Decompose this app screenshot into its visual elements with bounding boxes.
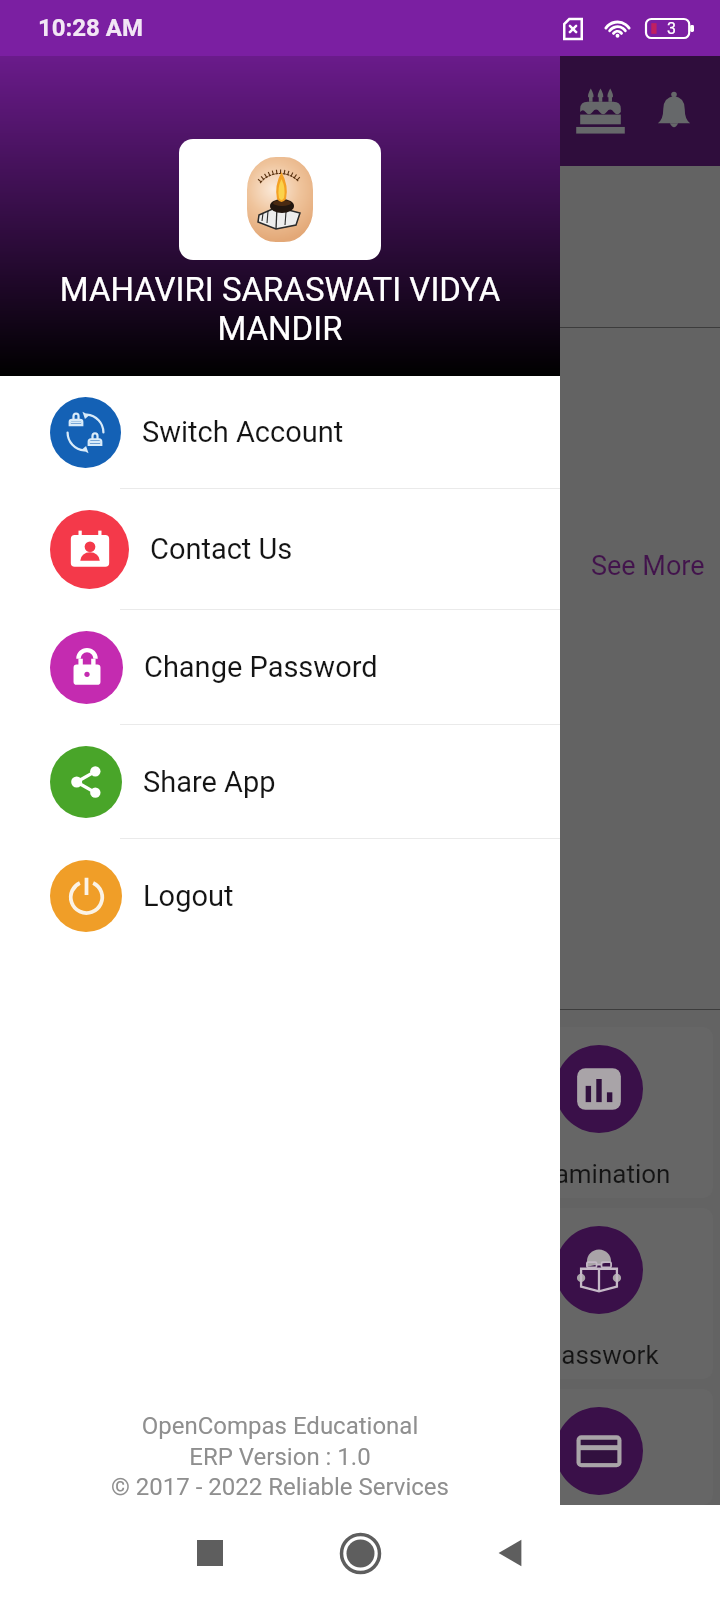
staticText: Switch Account — [142, 415, 344, 449]
staticText: Change Password — [144, 650, 378, 684]
staticText: OpenCompas Educational ERP Version : 1.0… — [0, 1412, 560, 1501]
button[interactable]: Notifications — [638, 75, 710, 147]
button[interactable]: Recents — [183, 1526, 237, 1580]
button[interactable]: Examination — [484, 1027, 713, 1198]
staticText: Share App — [143, 765, 276, 799]
button[interactable]: Fees — [484, 1389, 713, 1505]
button[interactable]: Gallery — [7, 1389, 235, 1505]
button[interactable]: Change Password — [0, 610, 560, 724]
staticText: Examination — [527, 1159, 671, 1189]
button[interactable]: Home — [333, 1526, 387, 1580]
button[interactable]: Switch Account — [0, 376, 560, 488]
button[interactable]: Classwork — [484, 1208, 713, 1379]
button[interactable]: Library — [245, 1389, 474, 1505]
button[interactable]: Birthdays — [564, 75, 636, 147]
staticText: 10:28 AM — [38, 14, 144, 42]
button[interactable]: Share App — [0, 725, 560, 838]
button[interactable]: Back — [483, 1526, 537, 1580]
button[interactable]: Logout — [0, 839, 560, 952]
staticText: Classwork — [538, 1340, 659, 1370]
button[interactable]: See More — [591, 550, 705, 582]
staticText: 3 — [667, 19, 676, 38]
staticText: Logout — [143, 879, 234, 913]
button[interactable]: Contact Us — [0, 489, 560, 609]
staticText: MAHAVIRI SARASWATI VIDYA MANDIR — [28, 270, 532, 348]
staticText: Contact Us — [150, 532, 293, 566]
